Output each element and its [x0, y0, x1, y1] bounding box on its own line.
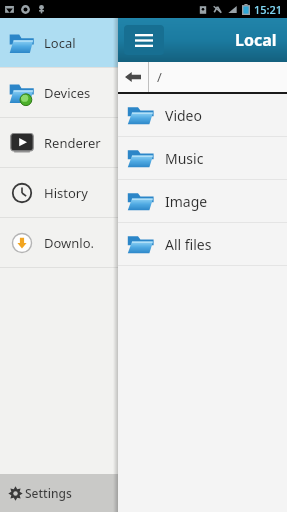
staticText: Video: [165, 106, 202, 125]
staticText: Settings: [25, 485, 72, 501]
staticText: Local: [235, 29, 277, 51]
staticText: 15:21: [254, 2, 283, 17]
staticText: Devices: [44, 84, 91, 102]
button[interactable]: Open navigation drawer: [124, 25, 164, 55]
staticText: All files: [165, 235, 212, 254]
staticText: Renderer: [44, 134, 101, 152]
button[interactable]: Music: [118, 137, 287, 179]
staticText: History: [44, 184, 88, 202]
staticText: Image: [165, 192, 208, 211]
staticText: Music: [165, 149, 204, 168]
staticText: /: [157, 68, 162, 86]
button[interactable]: Devices: [0, 68, 118, 117]
button[interactable]: Local: [0, 18, 118, 67]
button[interactable]: Image: [118, 180, 287, 222]
staticText: Downlo.: [44, 234, 95, 252]
button[interactable]: Downlo.: [0, 218, 118, 267]
button[interactable]: Back: [118, 62, 148, 92]
button[interactable]: Renderer: [0, 118, 118, 167]
button[interactable]: History: [0, 168, 118, 217]
button[interactable]: All files: [118, 223, 287, 265]
button[interactable]: Settings: [0, 474, 118, 512]
button[interactable]: Video: [118, 94, 287, 136]
staticText: Local: [44, 34, 76, 52]
